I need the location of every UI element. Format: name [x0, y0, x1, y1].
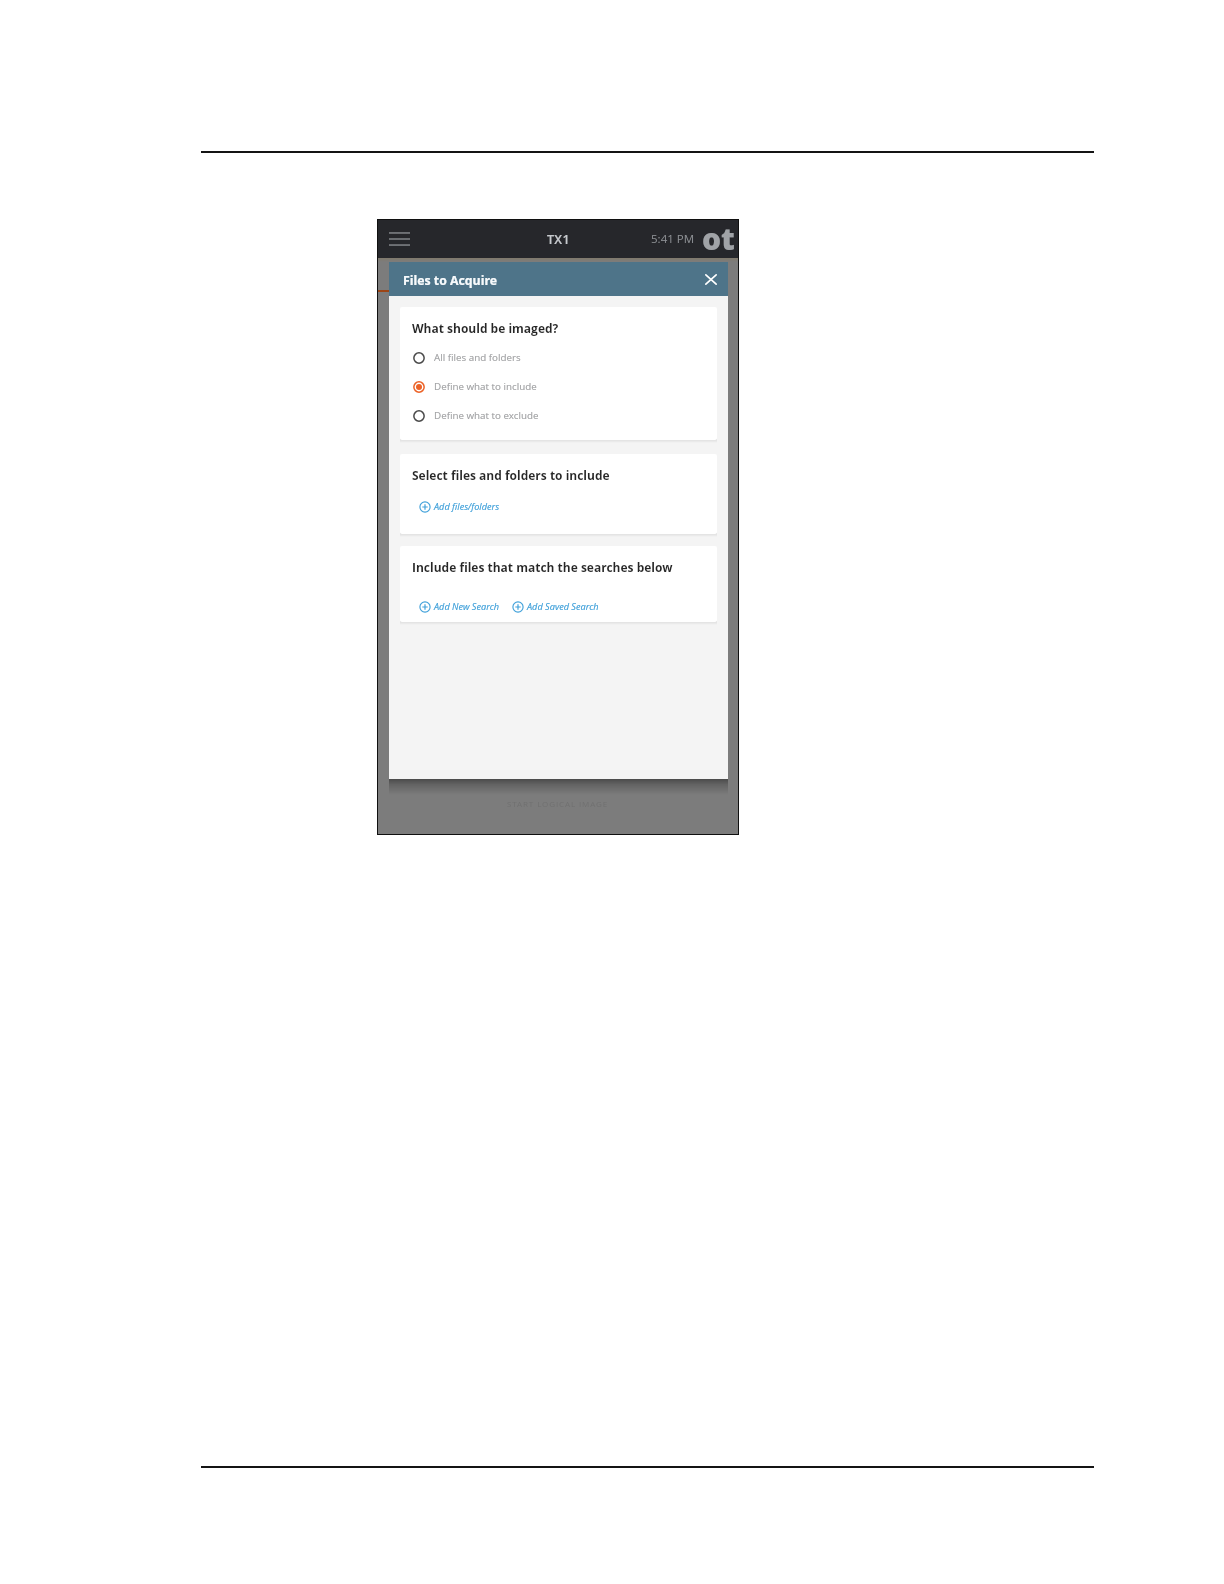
staticText: ot — [702, 218, 735, 256]
button[interactable]: Open navigation menu — [384, 220, 414, 258]
staticText: Add files/folders — [434, 500, 500, 513]
staticText: All files and folders — [434, 351, 521, 364]
button[interactable]: Define what to exclude — [412, 401, 705, 430]
button[interactable]: Add files/folders — [419, 500, 500, 513]
staticText: Files to Acquire — [403, 272, 497, 289]
button[interactable]: Close dialog — [694, 262, 728, 296]
staticText: TX1 — [547, 231, 570, 248]
staticText: Include files that match the searches be… — [412, 559, 673, 575]
button[interactable]: All files and folders — [412, 343, 705, 372]
staticText: 5:41 PM — [651, 231, 695, 247]
staticText: Define what to exclude — [434, 409, 539, 422]
button[interactable]: Define what to include — [412, 372, 705, 401]
button[interactable]: Add New Search — [419, 600, 500, 613]
staticText: Define what to include — [434, 380, 537, 393]
button[interactable]: Add Saved Search — [512, 600, 599, 613]
staticText: What should be imaged? — [412, 320, 559, 336]
staticText: Select files and folders to include — [412, 467, 610, 483]
staticText: Add Saved Search — [527, 600, 599, 613]
staticText: Add New Search — [434, 600, 500, 613]
